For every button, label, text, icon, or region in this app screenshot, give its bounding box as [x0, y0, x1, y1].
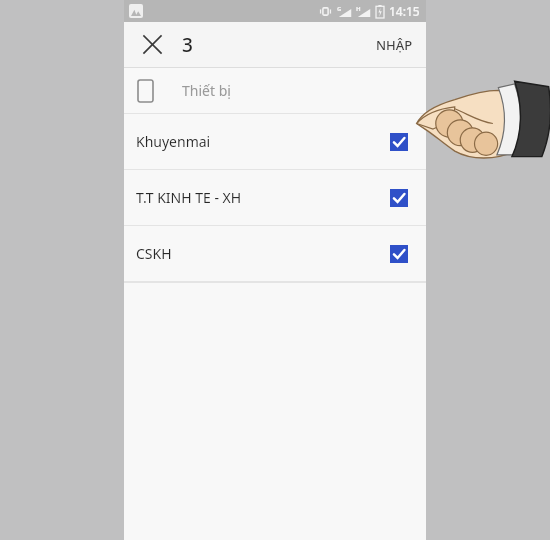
button[interactable]: CSKH — [124, 226, 426, 281]
staticText: T.T KINH TE - XH — [136, 188, 242, 207]
staticText: Thiết bị — [182, 81, 231, 100]
button[interactable]: T.T KINH TE - XH — [124, 170, 426, 225]
button[interactable]: Close — [130, 22, 174, 67]
staticText: 14:15 — [389, 3, 420, 19]
staticText: CSKH — [136, 244, 172, 263]
staticText: G — [337, 5, 342, 13]
staticText: NHẬP — [376, 36, 413, 54]
staticText: H — [356, 5, 361, 13]
button[interactable]: NHẬP — [363, 22, 426, 67]
staticText: 3 — [182, 32, 193, 58]
button[interactable]: Khuyenmai — [124, 114, 426, 169]
staticText: Khuyenmai — [136, 132, 211, 151]
